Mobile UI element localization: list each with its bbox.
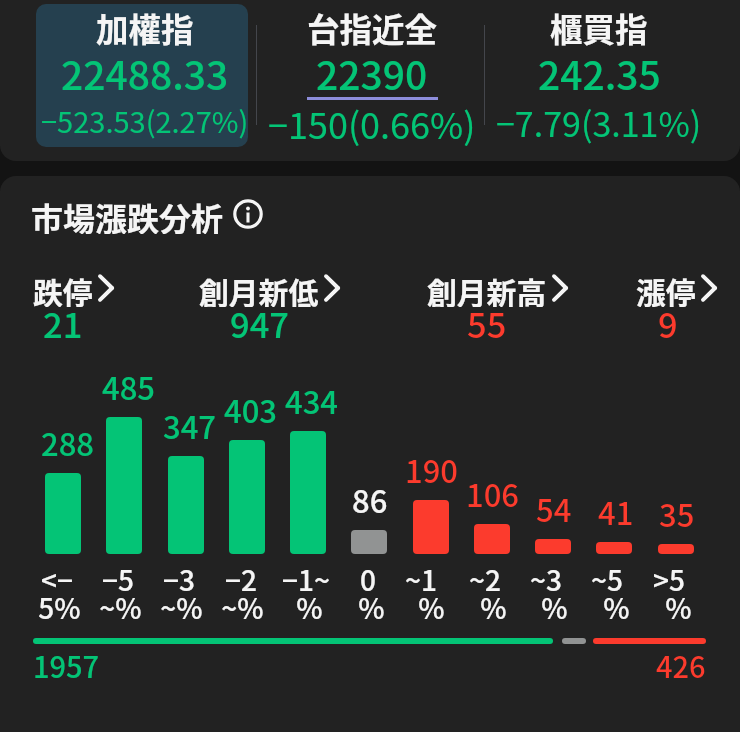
staticText: 426 bbox=[656, 644, 706, 686]
button[interactable] bbox=[474, 524, 510, 554]
button[interactable]: 加權指 bbox=[39, 0, 251, 147]
staticText: 市場漲跌分析 bbox=[31, 194, 224, 234]
staticText: % bbox=[296, 587, 323, 628]
staticText: ~% bbox=[160, 587, 203, 628]
staticText: 54 bbox=[536, 486, 572, 531]
other: Info bbox=[231, 197, 265, 231]
staticText: 0 bbox=[360, 559, 376, 600]
staticText: 1957 bbox=[33, 644, 100, 686]
staticText: 434 bbox=[285, 378, 339, 423]
staticText: −5 bbox=[102, 559, 134, 600]
staticText: 41 bbox=[598, 489, 634, 534]
button[interactable]: 創月新高 bbox=[427, 269, 573, 307]
staticText: 台指近全 bbox=[307, 4, 438, 51]
staticText: −1~ bbox=[282, 559, 330, 600]
button[interactable] bbox=[106, 417, 142, 554]
staticText: 5% bbox=[38, 587, 81, 628]
button[interactable]: 跌停 bbox=[33, 269, 119, 307]
staticText: 288 bbox=[41, 420, 95, 465]
staticText: % bbox=[480, 587, 507, 628]
staticText: 9 bbox=[658, 298, 678, 348]
button[interactable] bbox=[658, 544, 694, 554]
staticText: 347 bbox=[163, 403, 217, 448]
button[interactable] bbox=[168, 456, 204, 554]
staticText: 485 bbox=[102, 364, 156, 409]
button[interactable] bbox=[290, 431, 326, 554]
staticText: 櫃買指 bbox=[550, 4, 648, 51]
staticText: 403 bbox=[224, 387, 278, 432]
staticText: 22488.33 bbox=[61, 45, 229, 101]
staticText: 106 bbox=[466, 471, 520, 516]
staticText: −150(0.66%) bbox=[268, 97, 476, 149]
button[interactable] bbox=[596, 542, 632, 554]
staticText: ~2 bbox=[469, 559, 501, 600]
staticText: −523.53(2.27%) bbox=[41, 99, 249, 141]
button[interactable] bbox=[45, 473, 81, 554]
staticText: ~5 bbox=[591, 559, 623, 600]
staticText: % bbox=[603, 587, 630, 628]
staticText: 創月新低 bbox=[199, 269, 319, 307]
staticText: 漲停 bbox=[636, 269, 696, 307]
staticText: % bbox=[418, 587, 445, 628]
button[interactable]: 創月新低 bbox=[199, 269, 345, 307]
staticText: −3 bbox=[163, 559, 195, 600]
button[interactable]: 台指近全 bbox=[259, 0, 485, 147]
staticText: % bbox=[541, 587, 568, 628]
button[interactable]: 市場漲跌分析 bbox=[31, 194, 265, 234]
staticText: 947 bbox=[230, 298, 289, 348]
staticText: 86 bbox=[352, 477, 388, 522]
staticText: 21 bbox=[43, 298, 83, 348]
button[interactable] bbox=[351, 530, 387, 554]
staticText: 創月新高 bbox=[427, 269, 547, 307]
staticText: ~% bbox=[221, 587, 264, 628]
staticText: 35 bbox=[659, 491, 695, 536]
staticText: 跌停 bbox=[33, 269, 93, 307]
staticText: 22390 bbox=[316, 45, 428, 101]
staticText: % bbox=[665, 587, 692, 628]
staticText: 加權指 bbox=[96, 4, 194, 51]
button[interactable]: 漲停 bbox=[636, 269, 722, 307]
staticText: ~3 bbox=[530, 559, 562, 600]
staticText: 55 bbox=[467, 298, 507, 348]
staticText: % bbox=[358, 587, 385, 628]
staticText: 242.35 bbox=[538, 45, 661, 101]
staticText: ~% bbox=[99, 587, 142, 628]
button[interactable] bbox=[535, 539, 571, 554]
staticText: >5 bbox=[653, 559, 685, 600]
button[interactable] bbox=[229, 440, 265, 554]
staticText: ~1 bbox=[405, 559, 437, 600]
staticText: −7.79(3.11%) bbox=[496, 98, 702, 147]
staticText: <− bbox=[41, 559, 73, 600]
button[interactable]: 櫃買指 bbox=[486, 0, 712, 147]
button[interactable] bbox=[413, 500, 449, 554]
staticText: −2 bbox=[225, 559, 257, 600]
staticText: 190 bbox=[405, 447, 459, 492]
